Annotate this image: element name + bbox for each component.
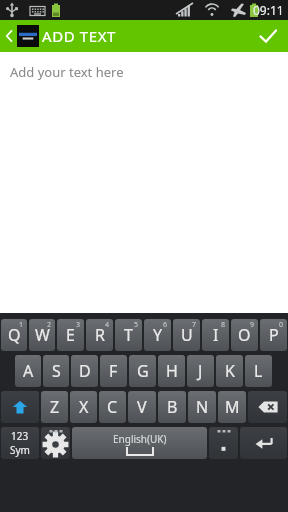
button[interactable]: S [43,355,69,387]
button[interactable]: A [15,355,41,387]
staticText: M [225,396,240,418]
button[interactable]: F [100,355,127,387]
staticText: W [35,324,50,346]
button[interactable]: D [71,355,98,387]
staticText: L [254,360,263,382]
button[interactable]: M [218,391,246,423]
button[interactable]: Q [1,319,27,351]
staticText: 123 [11,429,29,443]
staticText: U [181,324,193,346]
staticText: ADD TEXT [42,26,116,46]
staticText: 6 [163,320,168,330]
staticText: 3 [76,320,81,330]
button[interactable]: Shift [1,391,39,423]
button[interactable]: Backspace [248,391,287,423]
button[interactable]: R [86,319,113,351]
staticText: I [213,324,219,346]
button[interactable]: Period [209,427,238,459]
button[interactable]: B [158,391,186,423]
button[interactable]: Enter [240,427,287,459]
button[interactable]: K [216,355,243,387]
staticText: 1 [19,320,24,330]
staticText: C [107,396,118,418]
button[interactable]: H [158,355,185,387]
staticText: N [196,396,209,418]
button[interactable]: C [99,391,126,423]
staticText: S [52,360,61,382]
staticText: B [167,396,178,418]
staticText: R [95,324,105,346]
button[interactable]: X [70,391,97,423]
button[interactable]: I [202,319,229,351]
staticText: X [79,396,89,418]
button[interactable]: U [173,319,200,351]
button[interactable]: J [187,355,214,387]
staticText: K [225,360,235,382]
button[interactable]: G [129,355,156,387]
staticText: Add your text here [10,63,124,81]
staticText: H [166,360,178,382]
staticText: Y [153,324,163,346]
staticText: D [79,360,91,382]
button[interactable]: Done [248,20,288,52]
staticText: 2 [47,320,52,330]
staticText: 4 [105,320,110,330]
staticText: Sym [10,443,30,457]
staticText: T [124,324,133,346]
button[interactable]: Y [144,319,171,351]
staticText: V [137,396,147,418]
staticText: 09:11 [253,2,284,18]
button[interactable]: P [260,319,287,351]
staticText: 8 [221,320,226,330]
button[interactable]: V [128,391,156,423]
staticText: Z [50,396,60,418]
staticText: P [269,324,279,346]
button[interactable]: W [29,319,55,351]
staticText: G [137,360,149,382]
button[interactable]: T [115,319,142,351]
button[interactable]: 123 [1,427,39,459]
button[interactable]: E [57,319,84,351]
button[interactable]: N [188,391,216,423]
staticText: F [109,360,118,382]
button[interactable]: L [245,355,272,387]
button[interactable]: Z [41,391,68,423]
staticText: English(UK) [113,432,167,446]
button[interactable]: O [231,319,258,351]
staticText: O [238,324,251,346]
button[interactable]: English(UK) [72,427,207,459]
staticText: J [198,360,203,382]
staticText: 0 [279,320,284,330]
staticText: 7 [192,320,197,330]
staticText: A [23,360,34,382]
staticText: Q [8,324,21,346]
button[interactable]: Settings [41,427,70,459]
staticText: E [66,324,75,346]
staticText: 9 [250,320,255,330]
button[interactable]: Navigate up [0,25,45,47]
staticText: 5 [134,320,139,330]
